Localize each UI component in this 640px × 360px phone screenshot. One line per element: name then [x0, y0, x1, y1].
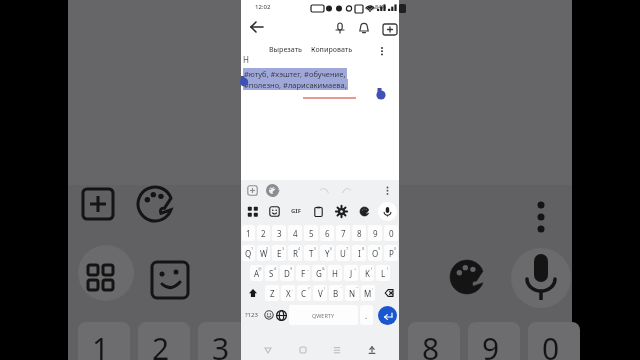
- button[interactable]: L: [376, 265, 390, 281]
- staticText: Н: [243, 54, 249, 65]
- button[interactable]: QWERTY: [289, 305, 358, 325]
- button[interactable]: F: [296, 265, 310, 281]
- button[interactable]: Notifications: [357, 20, 371, 34]
- staticText: 8: [362, 246, 365, 251]
- staticText: H: [332, 268, 338, 279]
- button[interactable]: Change language: [276, 305, 287, 325]
- button[interactable]: D: [280, 265, 294, 281]
- button[interactable]: Z: [265, 285, 279, 301]
- staticText: E: [277, 248, 282, 259]
- button[interactable]: Theme: [267, 185, 278, 196]
- button[interactable]: 3: [272, 225, 286, 241]
- staticText: #полезно, #ларисакимаева,: [244, 80, 347, 90]
- button[interactable]: Add: [247, 185, 258, 196]
- button[interactable]: Recents: [330, 343, 344, 357]
- staticText: :: [372, 286, 374, 291]
- button[interactable]: Q: [242, 245, 255, 261]
- button[interactable]: More: [382, 185, 393, 196]
- button[interactable]: Back: [245, 18, 263, 36]
- staticText: 0: [389, 228, 394, 239]
- staticText: &: [322, 266, 325, 271]
- staticText: _: [307, 266, 309, 271]
- button[interactable]: Backspace: [377, 285, 398, 301]
- button[interactable]: C: [297, 285, 311, 301]
- button[interactable]: O: [368, 245, 382, 261]
- staticText: 6: [330, 246, 333, 251]
- button[interactable]: W: [257, 245, 270, 261]
- staticText: L: [381, 268, 386, 279]
- staticText: T: [309, 248, 314, 259]
- button[interactable]: G: [312, 265, 326, 281]
- button[interactable]: I: [352, 245, 366, 261]
- button[interactable]: Enter: [378, 306, 397, 325]
- button[interactable]: Stickers: [263, 200, 285, 222]
- button[interactable]: Add to story: [381, 20, 395, 34]
- button[interactable]: Вырезать: [269, 45, 302, 55]
- button[interactable]: .: [360, 305, 373, 325]
- button[interactable]: Hide keyboard: [365, 343, 379, 357]
- staticText: 2: [152, 328, 170, 360]
- button[interactable]: Themes: [353, 200, 376, 222]
- button[interactable]: Apps: [241, 200, 263, 222]
- button[interactable]: Pin: [333, 20, 347, 34]
- button[interactable]: Home: [296, 343, 310, 357]
- staticText: ?: [308, 286, 310, 291]
- staticText: 8: [357, 228, 362, 239]
- staticText: @: [258, 266, 262, 271]
- staticText: R: [293, 248, 298, 259]
- staticText: P: [389, 248, 394, 259]
- button[interactable]: Undo: [319, 185, 330, 196]
- button[interactable]: 1: [242, 225, 255, 241]
- staticText: C: [301, 288, 307, 299]
- button[interactable]: U: [336, 245, 350, 261]
- staticText: 3: [282, 246, 285, 251]
- button[interactable]: M: [361, 285, 375, 301]
- staticText: V: [318, 288, 323, 299]
- button[interactable]: X: [281, 285, 295, 301]
- button[interactable]: N: [345, 285, 359, 301]
- button[interactable]: S: [265, 265, 278, 281]
- staticText: 1: [251, 246, 254, 251]
- button[interactable]: More options: [375, 41, 389, 58]
- button[interactable]: Копировать: [311, 45, 353, 55]
- button[interactable]: K: [360, 265, 374, 281]
- staticText: .: [365, 310, 368, 321]
- staticText: #ютуб, #хэштег, #обучение,: [244, 69, 346, 79]
- button[interactable]: 5: [304, 225, 318, 241]
- staticText: 9: [482, 328, 500, 360]
- button[interactable]: Redo: [341, 185, 352, 196]
- button[interactable]: Y: [320, 245, 334, 261]
- button[interactable]: Shift: [242, 285, 263, 301]
- staticText: QWERTY: [312, 312, 335, 319]
- button[interactable]: B: [329, 285, 343, 301]
- button[interactable]: 9: [368, 225, 382, 241]
- staticText: GIF: [291, 207, 301, 215]
- button[interactable]: V: [313, 285, 327, 301]
- button[interactable]: 4: [288, 225, 302, 241]
- button[interactable]: E: [272, 245, 286, 261]
- staticText: -: [339, 266, 341, 271]
- staticText: ": [356, 286, 358, 291]
- button[interactable]: Back: [261, 343, 275, 357]
- button[interactable]: Voice input: [376, 200, 399, 222]
- button[interactable]: R: [288, 245, 302, 261]
- button[interactable]: 7: [336, 225, 350, 241]
- button[interactable]: T: [304, 245, 318, 261]
- staticText: 5: [309, 228, 314, 239]
- button[interactable]: 0: [384, 225, 398, 241]
- staticText: S: [269, 268, 274, 279]
- button[interactable]: GIF: [285, 200, 307, 222]
- button[interactable]: P: [384, 245, 398, 261]
- button[interactable]: H: [328, 265, 342, 281]
- button[interactable]: Settings: [330, 200, 353, 222]
- staticText: 1: [92, 328, 110, 360]
- button[interactable]: ?123: [242, 305, 261, 325]
- button[interactable]: 6: [320, 225, 334, 241]
- staticText: $: [290, 266, 293, 271]
- button[interactable]: A: [250, 265, 263, 281]
- button[interactable]: Emoji: [263, 305, 274, 325]
- button[interactable]: 8: [352, 225, 366, 241]
- button[interactable]: J: [344, 265, 358, 281]
- button[interactable]: 2: [257, 225, 270, 241]
- button[interactable]: Clipboard: [307, 200, 330, 222]
